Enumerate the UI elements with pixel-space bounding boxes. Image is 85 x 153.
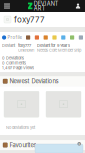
- staticText: x: [78, 142, 80, 146]
- staticText: No deviations yet: [6, 125, 35, 130]
- staticText: 1,497 Page Views: [2, 65, 34, 70]
- button[interactable]: Favourites: [0, 140, 85, 150]
- staticText: Unknown: [18, 48, 34, 53]
- button[interactable]: Gallery: [26, 35, 30, 40]
- staticText: Deviant: [2, 43, 15, 48]
- button[interactable]: Favourites: [35, 35, 39, 40]
- staticText: Newest Deviations: [9, 78, 58, 85]
- staticText: 0 Deviations: [2, 56, 24, 60]
- staticText: Deviant for 9 Years: [37, 43, 70, 48]
- button[interactable]: DeviantArt home: [28, 0, 59, 12]
- button[interactable]: Posts: [44, 35, 48, 40]
- button[interactable]: About: [70, 35, 74, 40]
- staticText: ART: [34, 5, 46, 12]
- staticText: Needs Core Membership: [37, 48, 81, 53]
- button[interactable]: Close ad: [77, 142, 81, 146]
- staticText: Favourites: [9, 141, 36, 149]
- button[interactable]: Menu: [1, 0, 13, 12]
- button[interactable]: Profile: [2, 35, 21, 40]
- staticText: DEVIANT: [34, 0, 59, 7]
- button[interactable]: Newest Deviations: [0, 76, 85, 86]
- button[interactable]: foxy777: [0, 12, 85, 27]
- staticText: foxy777: [14, 15, 45, 24]
- button[interactable]: Badges: [52, 35, 57, 40]
- staticText: 0 Comments: [2, 60, 26, 65]
- button[interactable]: More: [79, 35, 83, 40]
- button[interactable]: Account: [73, 0, 83, 12]
- staticText: foxy777: [18, 43, 31, 48]
- button[interactable]: Journal: [61, 35, 65, 40]
- staticText: Profile: [7, 35, 21, 40]
